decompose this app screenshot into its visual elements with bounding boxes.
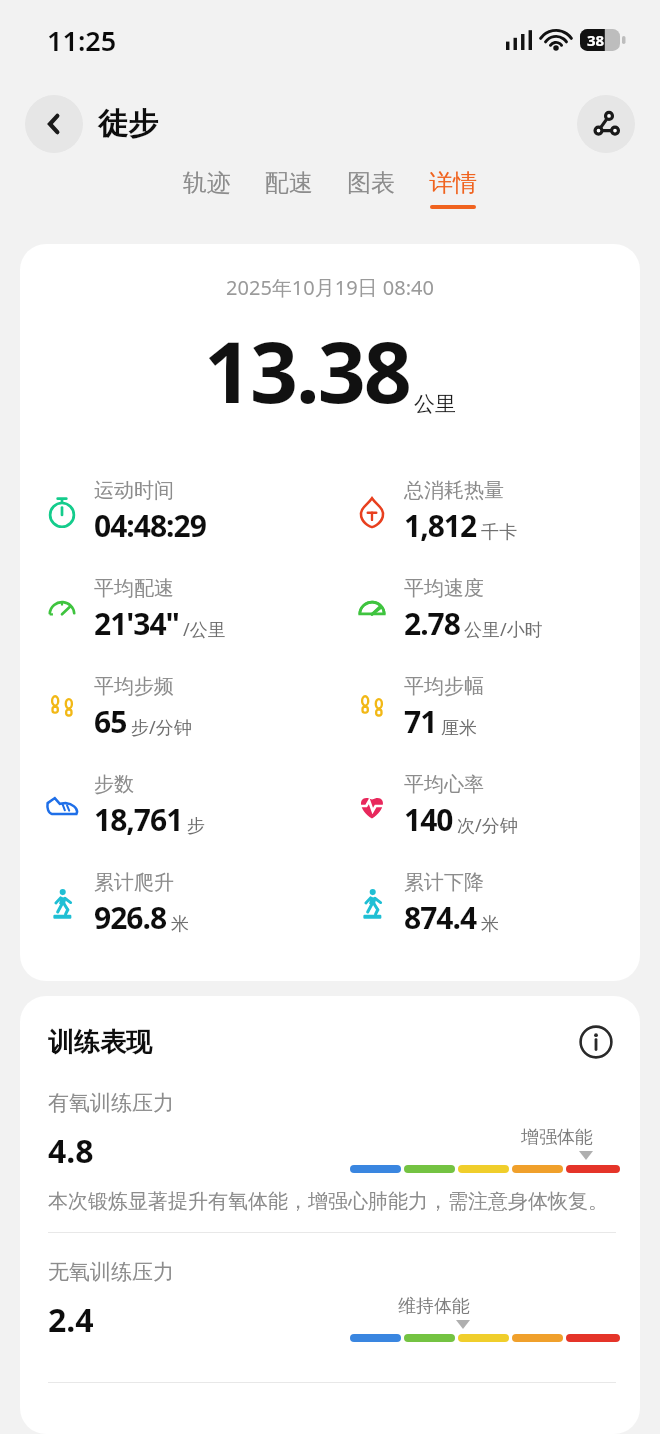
staticText: 无氧训练压力 — [48, 1259, 174, 1285]
staticText: 有氧训练压力 — [48, 1090, 174, 1116]
staticText: 1,812 — [404, 505, 477, 546]
staticText: 次/分钟 — [457, 813, 518, 838]
staticText: 874.4 — [404, 897, 477, 938]
staticText: 米 — [481, 913, 499, 936]
button[interactable]: 步数 — [42, 757, 330, 855]
staticText: 详情 — [429, 168, 477, 198]
button[interactable]: 详情 — [429, 168, 477, 209]
button[interactable]: 总消耗热量 — [352, 463, 640, 561]
staticText: 4.8 — [48, 1129, 94, 1173]
staticText: 2025年10月19日 08:40 — [20, 274, 640, 301]
staticText: 65 — [94, 701, 127, 742]
staticText: 步数 — [94, 772, 134, 797]
button[interactable]: 配速 — [265, 168, 313, 205]
staticText: 71 — [404, 701, 437, 742]
staticText: 配速 — [265, 168, 313, 198]
staticText: 总消耗热量 — [404, 478, 504, 503]
button[interactable]: 平均配速 — [42, 561, 330, 659]
staticText: 图表 — [347, 168, 395, 198]
button[interactable]: Back — [25, 95, 83, 153]
staticText: 徒步 — [98, 105, 158, 143]
staticText: 平均步频 — [94, 674, 174, 699]
button[interactable]: 平均心率 — [352, 757, 640, 855]
button[interactable]: Share — [577, 95, 635, 153]
staticText: 平均配速 — [94, 576, 174, 601]
staticText: 140 — [404, 799, 453, 840]
staticText: 米 — [171, 913, 189, 936]
button[interactable]: 累计下降 — [352, 855, 640, 953]
button[interactable]: 平均步幅 — [352, 659, 640, 757]
staticText: 21'34" — [94, 603, 179, 644]
staticText: 04:48:29 — [94, 505, 206, 546]
staticText: 13.38 — [204, 313, 410, 427]
staticText: 训练表现 — [48, 1026, 152, 1059]
staticText: 平均步幅 — [404, 674, 484, 699]
staticText: 38 — [587, 30, 605, 50]
staticText: 公里 — [414, 391, 456, 417]
button[interactable]: Info — [576, 1022, 616, 1062]
staticText: 本次锻炼显著提升有氧体能，增强心肺能力，需注意身体恢复。 — [48, 1189, 608, 1214]
button[interactable]: 累计爬升 — [42, 855, 330, 953]
staticText: 平均心率 — [404, 772, 484, 797]
staticText: 18,761 — [94, 799, 183, 840]
button[interactable]: 平均步频 — [42, 659, 330, 757]
staticText: 2.4 — [48, 1298, 94, 1342]
staticText: 轨迹 — [183, 168, 231, 198]
staticText: 11:25 — [47, 22, 117, 59]
button[interactable]: 平均速度 — [352, 561, 640, 659]
staticText: 926.8 — [94, 897, 167, 938]
staticText: 累计下降 — [404, 870, 484, 895]
staticText: 步/分钟 — [131, 715, 192, 740]
staticText: 厘米 — [441, 717, 477, 740]
staticText: 平均速度 — [404, 576, 484, 601]
staticText: 千卡 — [481, 521, 517, 544]
button[interactable]: 轨迹 — [183, 168, 231, 205]
staticText: 运动时间 — [94, 478, 174, 503]
button[interactable]: 运动时间 — [42, 463, 330, 561]
staticText: 步 — [187, 815, 205, 838]
button[interactable]: 图表 — [347, 168, 395, 205]
staticText: /公里 — [183, 617, 226, 642]
staticText: 2.78 — [404, 603, 460, 644]
staticText: 增强体能 — [521, 1126, 593, 1149]
staticText: 公里/小时 — [464, 617, 543, 642]
staticText: 维持体能 — [398, 1295, 470, 1318]
staticText: 累计爬升 — [94, 870, 174, 895]
